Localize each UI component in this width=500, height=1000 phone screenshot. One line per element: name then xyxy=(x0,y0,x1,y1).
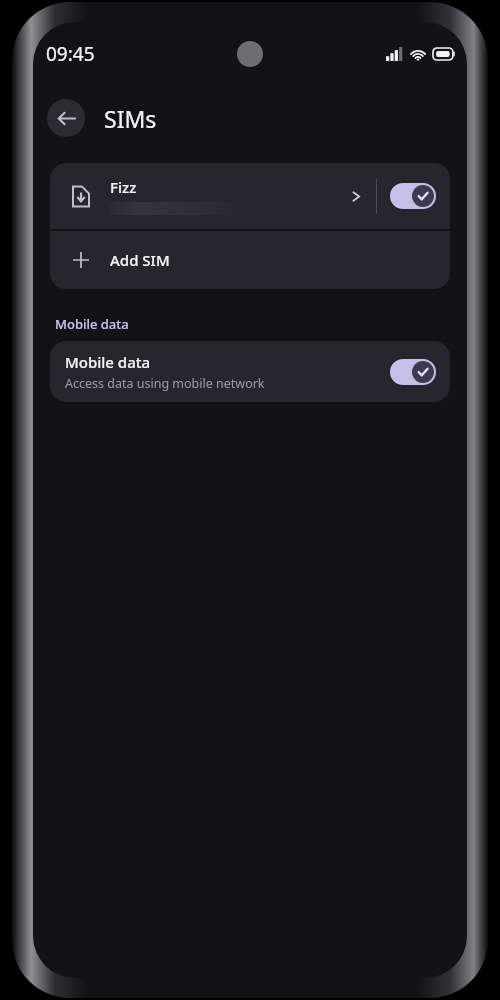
staticText: 09:45 xyxy=(46,41,95,67)
button[interactable]: Back xyxy=(47,99,85,137)
staticText: SIMs xyxy=(104,103,157,134)
button[interactable]: Toggle on xyxy=(390,359,436,385)
staticText: Fizz xyxy=(110,177,137,197)
button[interactable]: Fizz xyxy=(50,163,450,229)
staticText: Mobile data xyxy=(65,352,151,372)
staticText: Add SIM xyxy=(110,250,170,270)
button[interactable]: Add SIM xyxy=(50,231,450,289)
button[interactable]: Toggle on xyxy=(390,183,436,209)
staticText: Access data using mobile network xyxy=(65,375,265,392)
button[interactable]: Mobile data xyxy=(50,341,450,402)
staticText: Mobile data xyxy=(55,315,129,333)
